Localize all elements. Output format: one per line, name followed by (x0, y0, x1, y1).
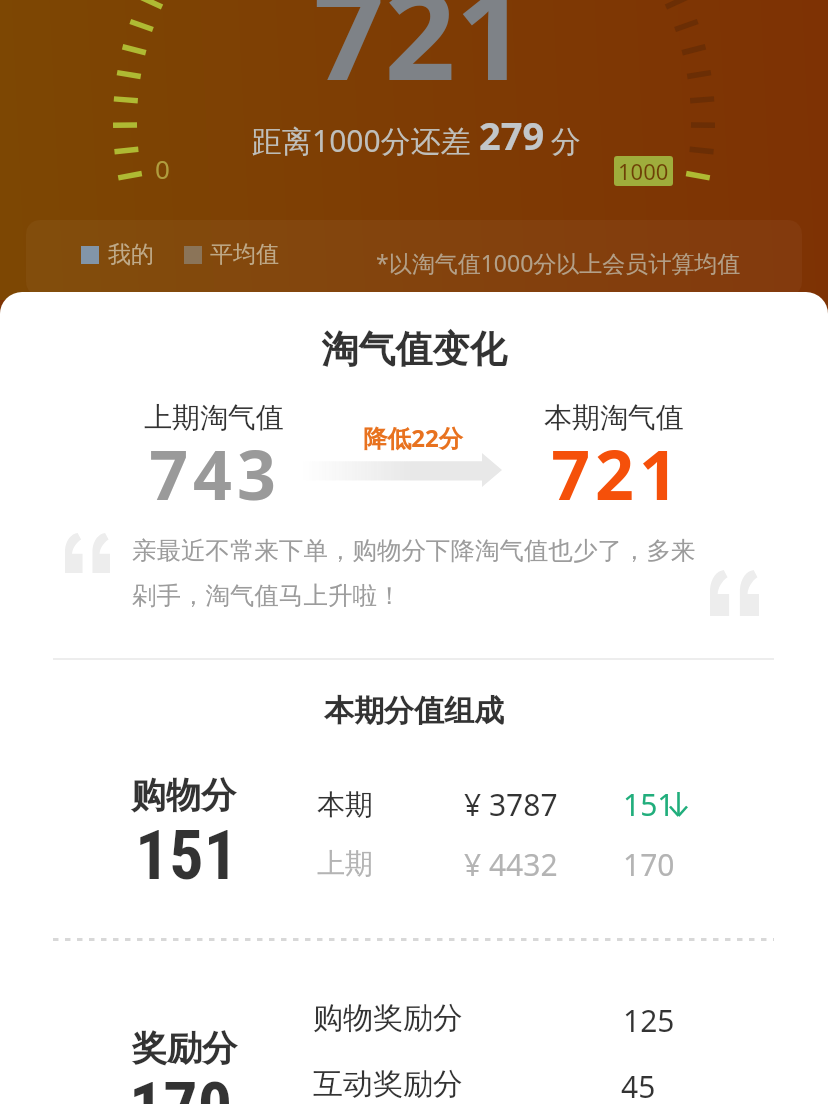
staticText: 上期 (317, 846, 373, 881)
staticText: 互动奖励分 (313, 1065, 463, 1103)
staticText: 170 (623, 844, 675, 885)
staticText: 平均值 (210, 240, 279, 269)
staticText: 本期分值组成 (0, 692, 828, 730)
staticText: 本期 (317, 787, 373, 822)
staticText: 奖励分 (132, 1026, 237, 1070)
staticText: 1000 (618, 156, 669, 186)
staticText: 购物分 (131, 773, 236, 817)
staticText: 分 (551, 123, 581, 161)
staticText: 125 (623, 1000, 675, 1041)
button[interactable]: 满分 1000 (614, 156, 673, 186)
button[interactable]: 购物分 (0, 738, 828, 938)
staticText: 淘气值变化 (0, 326, 828, 373)
staticText: 购物奖励分 (313, 999, 463, 1037)
staticText: 45 (621, 1066, 656, 1104)
staticText: 亲最近不常来下单，购物分下降淘气值也少了，多来 剁手，淘气值马上升啦！ (132, 535, 772, 612)
staticText: 279 (479, 109, 545, 161)
staticText: ¥ 3787 (464, 784, 558, 825)
staticText: 我的 (108, 240, 154, 269)
staticText: 距离1000分还差 (252, 120, 471, 161)
staticText: 151 (623, 784, 675, 825)
staticText: 上期淘气值 (118, 400, 310, 435)
button[interactable]: 我的 (81, 240, 154, 269)
button[interactable]: 平均值 (184, 240, 279, 269)
staticText: 0 (155, 151, 170, 186)
staticText: 151 (135, 816, 239, 896)
staticText: 721 (6, 0, 828, 116)
staticText: 721 (521, 427, 713, 520)
button[interactable]: 奖励分 (0, 952, 828, 1104)
other: 淘气值仪表盘 721/1000 (0, 0, 828, 1104)
staticText: *以淘气值1000分以上会员计算均值 (376, 247, 741, 278)
staticText: ¥ 4432 (464, 844, 558, 885)
staticText: 170 (129, 1068, 233, 1104)
staticText: 本期淘气值 (518, 400, 710, 435)
staticText: 743 (119, 427, 311, 520)
staticText: 降低22分 (318, 421, 508, 454)
